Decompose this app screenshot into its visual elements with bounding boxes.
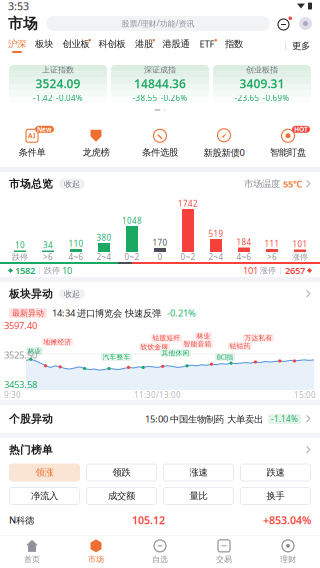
staticText: 涨停 <box>258 266 276 275</box>
staticText: N科德 <box>9 514 34 526</box>
staticText: 钴股短纤 <box>152 334 180 342</box>
staticText: 10 <box>60 264 72 277</box>
staticText: 成交额 <box>108 490 135 502</box>
staticText: 林业 <box>196 332 210 340</box>
staticText: -0.04% <box>56 93 83 103</box>
staticText: 林业 <box>27 347 41 355</box>
button[interactable]: 上证指数 <box>9 65 107 103</box>
staticText: 3525.50 <box>4 349 37 361</box>
staticText: 3453.58 <box>4 378 37 391</box>
staticText: 龙虎榜 <box>82 147 109 158</box>
staticText: 3:53 <box>8 0 29 13</box>
staticText: 55℃ <box>283 178 302 190</box>
button[interactable]: 龙虎榜 <box>64 117 128 167</box>
staticText: 领涨 <box>35 467 53 478</box>
staticText: 2~4 <box>208 252 223 262</box>
staticText: -1.42 <box>33 93 53 103</box>
button[interactable]: 自选 <box>128 536 192 568</box>
button[interactable]: HOT <box>256 117 320 167</box>
button[interactable]: 涨速 <box>163 464 233 481</box>
staticText: 9:30 <box>4 390 21 400</box>
staticText: 15:00 <box>294 390 316 400</box>
staticText: 3524.09 <box>35 76 80 91</box>
staticText: 首页 <box>24 554 40 564</box>
button[interactable]: 交易 <box>192 536 256 568</box>
staticText: 14844.36 <box>134 76 186 91</box>
staticText: 智能盯盘 <box>270 147 306 158</box>
staticText: 市场温度 <box>244 178 280 190</box>
button[interactable]: 市场 <box>64 536 128 568</box>
button[interactable]: 跌速 <box>240 464 310 481</box>
button[interactable]: 新股新债0 <box>192 117 256 167</box>
staticText: 2~4 <box>96 252 111 262</box>
staticText: 101 <box>292 239 307 249</box>
staticText: 板块 <box>35 38 53 50</box>
button[interactable]: 个股异动 <box>0 405 320 433</box>
staticText: 380 <box>96 232 111 243</box>
button[interactable]: 量比 <box>163 487 233 504</box>
button[interactable]: 深证成指 <box>111 65 209 103</box>
staticText: -38.55 <box>132 93 157 103</box>
staticText: 净流入 <box>31 490 58 502</box>
staticText: 其他休闲 <box>161 349 189 357</box>
staticText: 指数 <box>225 38 243 50</box>
staticText: ETF <box>199 38 214 50</box>
staticText: 34 <box>43 240 53 250</box>
staticText: 条件选股 <box>142 147 178 158</box>
staticText: 更多 <box>292 40 310 52</box>
staticText: 4~6 <box>68 252 83 262</box>
staticText: 收起 <box>64 289 80 299</box>
button[interactable]: 更多 <box>286 35 316 57</box>
button[interactable]: 换手 <box>240 487 310 504</box>
button[interactable]: 理财 <box>256 536 320 568</box>
staticText: 170 <box>152 237 167 248</box>
staticText: 收起 <box>64 179 80 189</box>
button[interactable]: 收起 <box>59 288 85 299</box>
button[interactable]: 条件选股 <box>128 117 192 167</box>
staticText: 105.12 <box>132 513 165 527</box>
button[interactable]: AI <box>0 117 64 167</box>
button[interactable]: 首页 <box>0 536 64 568</box>
staticText: HOT <box>294 125 308 134</box>
staticText: 最新异动 <box>12 308 44 318</box>
button[interactable]: 沪深 <box>4 35 30 57</box>
button[interactable]: 领涨 <box>9 464 79 481</box>
staticText: 地摊经济 <box>43 338 71 346</box>
button[interactable]: 成交额 <box>86 487 156 504</box>
staticText: AI <box>28 131 36 140</box>
staticText: -1.14% <box>271 414 298 424</box>
staticText: 0 <box>157 252 162 262</box>
staticText: 跌停 <box>12 252 28 262</box>
staticText: -23.65 <box>234 93 259 103</box>
button[interactable]: 收起 <box>59 178 85 189</box>
button[interactable]: 港股通 <box>158 35 194 57</box>
button[interactable]: Profile <box>299 17 312 30</box>
button[interactable]: 科创板 <box>94 35 130 57</box>
button[interactable]: Messages <box>278 16 292 30</box>
button[interactable]: 指数 <box>220 35 248 57</box>
staticText: 量比 <box>189 490 207 502</box>
staticText: 1048 <box>122 215 142 226</box>
staticText: 热门榜单 <box>9 443 53 456</box>
staticText: 10 <box>15 240 25 250</box>
staticText: 涨停 <box>292 252 308 262</box>
button[interactable]: 领跌 <box>86 464 156 481</box>
staticText: 创业板 <box>62 38 89 50</box>
button[interactable]: 创业板指 <box>213 65 311 103</box>
button[interactable]: 板块 <box>30 35 58 57</box>
staticText: 领跌 <box>112 467 130 478</box>
staticText: 沪深 <box>8 38 26 50</box>
button[interactable]: 净流入 <box>9 487 79 504</box>
button[interactable]: 港股 <box>130 35 158 57</box>
staticText: 0~2 <box>180 252 195 262</box>
button[interactable]: ETF <box>194 35 220 57</box>
button[interactable]: 创业板 <box>58 35 94 57</box>
staticText: 上证指数 <box>42 65 74 75</box>
staticText: 110 <box>68 238 83 249</box>
staticText: 101 <box>243 264 258 277</box>
staticText: 市场总览 <box>9 177 53 190</box>
staticText: 科创板 <box>98 38 125 50</box>
